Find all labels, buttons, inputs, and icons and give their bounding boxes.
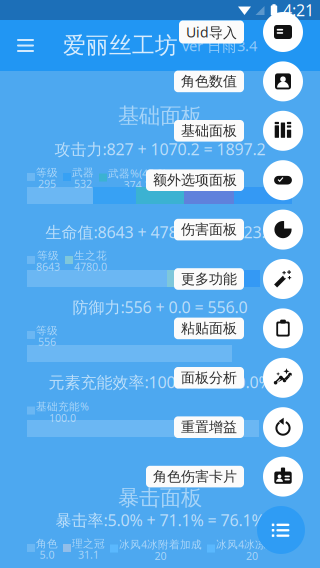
staticText: 重置增益 (181, 418, 237, 436)
staticText: 4780.0 (74, 259, 107, 274)
button[interactable]: 粘贴面板 (174, 318, 244, 339)
button[interactable]: Menu (257, 506, 305, 554)
button[interactable]: Uid导入 (179, 20, 244, 43)
staticText: 角色伤害卡片 (153, 468, 237, 485)
staticText: 冰风4冰冻加成 (216, 537, 288, 551)
staticText: 生命值:8643 + 4780.0 = 13423.0 (45, 221, 274, 243)
staticText: 532 (74, 176, 92, 191)
staticText: 攻击力:827 + 1070.2 = 1897.2 (54, 138, 265, 160)
button[interactable]: 面板分析 (263, 358, 303, 398)
staticText: 等级 (36, 324, 58, 337)
staticText: 暴击面板 (118, 485, 202, 511)
staticText: 556 (38, 334, 56, 349)
button[interactable]: 额外选项面板 (146, 169, 244, 191)
staticText: 伤害面板 (181, 221, 237, 238)
staticText: 生之花 (74, 249, 107, 262)
button[interactable]: 更多功能 (263, 259, 303, 299)
button[interactable]: 伤害面板 (263, 210, 303, 250)
button[interactable]: 角色数值 (263, 61, 303, 101)
staticText: 冰风4冰附着加成 (119, 537, 202, 551)
button[interactable]: 伤害面板 (174, 219, 244, 240)
staticText: 等级 (36, 166, 58, 179)
button[interactable]: 角色伤害卡片 (146, 466, 244, 487)
staticText: 100.0 (49, 410, 76, 425)
staticText: 爱丽丝工坊 (63, 31, 178, 60)
staticText: 基础充能% (36, 399, 89, 413)
staticText: 374.2 (123, 177, 150, 192)
button[interactable]: 额外选项面板 (263, 160, 303, 200)
button[interactable]: 基础面板 (263, 111, 303, 151)
staticText: 5.0 (39, 547, 54, 562)
staticText: 理之冠 (72, 537, 105, 550)
staticText: 31.1 (78, 547, 99, 562)
staticText: 20 (154, 548, 166, 563)
staticText: 粘贴面板 (181, 320, 237, 337)
staticText: 面板分析 (181, 369, 237, 387)
staticText: 4:21 (283, 0, 314, 21)
staticText: 武器 (72, 166, 94, 179)
button[interactable]: 重置增益 (263, 407, 303, 447)
staticText: 基础面板 (181, 122, 237, 140)
button[interactable]: Menu (0, 20, 54, 71)
staticText: 额外选项面板 (153, 171, 237, 189)
staticText: Uid导入 (186, 22, 237, 41)
staticText: 元素充能效率:100.0% = 100.0% (48, 371, 271, 393)
button[interactable]: Uid导入 (263, 12, 303, 52)
staticText: 防御力:556 + 0.0 = 556.0 (72, 296, 247, 318)
staticText: 8643 (36, 259, 60, 274)
staticText: 20 (246, 548, 258, 563)
staticText: 武器%(45.3) (108, 166, 166, 180)
staticText: 等级 (37, 249, 59, 262)
button[interactable]: 更多功能 (174, 268, 244, 290)
button[interactable]: 粘贴面板 (263, 308, 303, 348)
staticText: 暴击率:5.0% + 71.1% = 76.1% (55, 509, 264, 531)
button[interactable]: 角色数值 (174, 71, 244, 92)
staticText: 295 (38, 176, 56, 191)
button[interactable]: 角色伤害卡片 (263, 457, 303, 497)
staticText: ver 日雨3.4 (178, 35, 257, 55)
button[interactable]: 重置增益 (174, 416, 244, 438)
staticText: 角色 (36, 537, 58, 550)
button[interactable]: 面板分析 (174, 367, 244, 389)
staticText: 角色数值 (181, 73, 237, 90)
staticText: 基础面板 (118, 103, 202, 129)
button[interactable]: 基础面板 (174, 120, 244, 142)
staticText: 更多功能 (181, 270, 237, 288)
